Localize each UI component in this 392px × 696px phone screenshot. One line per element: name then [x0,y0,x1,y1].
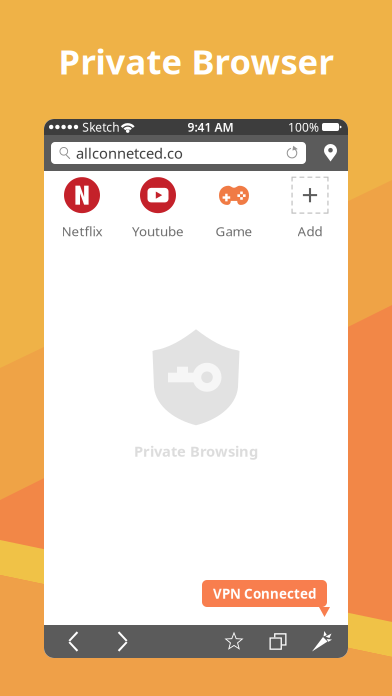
staticText: Youtube [132,222,184,240]
staticText: allconnetced.co [76,143,183,163]
staticText: Sketch [82,119,119,135]
button[interactable]: Forward [98,625,148,658]
button[interactable]: Tabs [256,625,300,658]
staticText: Private Browsing [134,441,258,461]
staticText: Add [297,222,322,240]
button[interactable]: Location [314,140,347,166]
button[interactable]: Game [196,177,272,240]
staticText: Game [215,222,252,240]
button[interactable]: Youtube [120,177,196,240]
button[interactable]: Back [48,625,98,658]
button[interactable]: Add [272,177,348,240]
staticText: 100% [288,119,319,135]
staticText: VPN Connected [213,585,316,602]
staticText: 9:41 AM [188,119,234,135]
button[interactable]: Private mode [300,625,344,658]
button[interactable]: Bookmarks [212,625,256,658]
button[interactable]: allconnetced.co [51,142,306,164]
button[interactable]: Netflix [44,177,120,240]
staticText: Private Browser [58,38,333,84]
staticText: Netflix [61,222,102,240]
